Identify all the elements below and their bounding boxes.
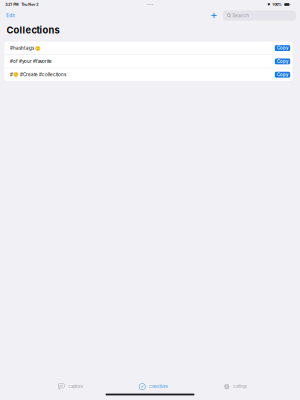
staticText: Copy [277,46,288,51]
button[interactable]: #of #your #favorite [4,55,292,68]
staticText: Thu Nov 2 [21,2,38,7]
staticText: 3:21 PM [5,2,18,7]
button[interactable]: Copy [275,72,290,78]
button[interactable]: Copy [275,58,290,64]
staticText: #hashtags 🙂 [10,45,41,51]
button[interactable]: Settings [221,382,250,391]
staticText: Copy [277,72,288,77]
staticText: #🙂 #Create #collections [10,72,66,77]
staticText: Search [232,13,249,18]
staticText: Copy [277,59,288,64]
button[interactable]: Edit [5,11,15,20]
button[interactable]: #hashtags 🙂 [4,42,292,54]
staticText: 100% [272,2,282,7]
button[interactable]: Collections [136,381,171,392]
staticText: #of #your #favorite [10,59,52,64]
button[interactable]: Copy [275,45,290,51]
staticText: Captions [68,384,83,389]
button[interactable]: Search [223,10,296,21]
button[interactable]: Add collection [208,9,220,21]
button[interactable]: #🙂 #Create #collections [4,68,292,81]
button[interactable]: Captions [55,381,86,392]
staticText: Edit [6,13,14,18]
staticText: Settings [233,384,247,389]
staticText: Collections [6,24,59,35]
staticText: Collections [149,384,168,389]
